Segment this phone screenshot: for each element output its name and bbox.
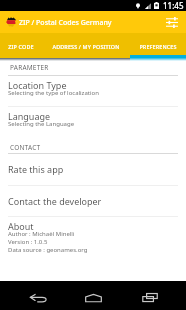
button[interactable]: Language [0,107,186,137]
staticText: ZIP / Postal Codes Germany [19,18,112,28]
button[interactable]: About [0,217,186,253]
staticText: About [8,220,34,232]
button[interactable]: Settings [161,11,183,33]
staticText: Language [8,110,51,122]
staticText: Data source : geonames.org [8,246,88,254]
staticText: Contact the developer [8,195,102,207]
button[interactable]: PREFERENCES [130,33,186,55]
button[interactable]: ADDRESS / MY POSITION [41,33,130,55]
button[interactable]: Location Type [0,76,186,106]
button[interactable]: ZIP CODE [0,33,41,55]
staticText: 11:45 [163,0,184,11]
staticText: ZIP CODE [8,43,34,50]
button[interactable]: Recents [135,281,161,310]
staticText: Selecting the type of localization [8,89,99,97]
staticText: Selecting the Language [8,120,75,128]
staticText: CONTACT [10,143,41,152]
button[interactable]: Back [25,281,51,310]
staticText: PREFERENCES [139,43,177,50]
staticText: ADDRESS / MY POSITION [52,43,120,50]
button[interactable]: Rate this app [0,154,186,185]
button[interactable]: Contact the developer [0,186,186,216]
staticText: Rate this app [8,163,64,175]
staticText: PARAMETER [10,63,49,72]
staticText: Location Type [8,79,67,91]
staticText: Version : 1.0.5 [8,238,48,246]
staticText: Author : Michaël Minelli [8,230,75,238]
button[interactable]: Home [80,281,106,310]
